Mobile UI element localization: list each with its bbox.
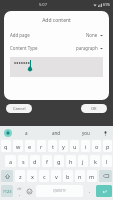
button[interactable]: a [5,155,16,167]
button[interactable]: you [71,126,101,139]
staticText: p [106,143,110,150]
button[interactable]: y [59,140,68,152]
staticText: u [73,143,77,150]
staticText: q [4,143,8,150]
staticText: k [94,158,97,165]
staticText: r [40,143,43,150]
button[interactable]: z [15,170,25,182]
staticText: ?123 [3,189,12,194]
staticText: Cancel [13,106,26,111]
button[interactable]: l [102,155,112,167]
button[interactable]: h [66,155,76,167]
button[interactable]: e [25,140,35,152]
staticText: s [22,158,25,165]
staticText: c [43,173,46,180]
button[interactable]: Emoji [25,185,34,197]
button[interactable]: =\< [15,185,23,197]
staticText: x [31,173,34,180]
staticText: 61% [103,2,110,7]
button[interactable]: s [18,155,28,167]
button[interactable]: o [92,140,101,152]
button[interactable]: Backspace [99,170,112,182]
button[interactable]: Cancel [6,104,32,113]
staticText: =\< [17,187,22,191]
staticText: QWERTY [53,189,66,193]
button[interactable]: Content Type [4,44,109,52]
button[interactable]: Google [4,129,12,137]
button[interactable]: . [85,185,94,197]
staticText: h [69,158,73,165]
staticText: t [52,143,54,150]
staticText: a [25,130,28,136]
staticText: OK [91,106,97,111]
staticText: paragraph [76,45,98,51]
button[interactable]: t [48,140,57,152]
staticText: y [62,143,65,150]
staticText: , [19,191,21,196]
button[interactable]: n [75,170,85,182]
button[interactable]: j [78,155,88,167]
staticText: o [95,143,99,150]
staticText: Content Type [10,45,38,51]
button[interactable]: b [63,170,73,182]
staticText: z [19,173,22,180]
staticText: b [66,173,70,180]
button[interactable]: Voice input [101,129,109,137]
staticText: n [78,173,82,180]
button[interactable]: u [70,140,79,152]
staticText: you [82,130,90,136]
button[interactable]: d [30,155,40,167]
staticText: e [28,143,32,150]
staticText: Add page [10,32,30,38]
button[interactable]: v [51,170,61,182]
button[interactable]: i [81,140,90,152]
staticText: g [57,158,61,165]
button[interactable]: OK [81,104,107,113]
staticText: l [106,158,108,165]
staticText: d [33,158,37,165]
button[interactable]: r [37,140,46,152]
button[interactable]: w [13,140,23,152]
button[interactable]: c [39,170,49,182]
staticText: v [55,173,58,180]
button[interactable] [10,57,103,77]
button[interactable]: g [54,155,64,167]
button[interactable]: Space [36,185,83,197]
button[interactable]: k [90,155,100,167]
button[interactable]: m [87,170,97,182]
staticText: None [86,32,98,38]
staticText: w [16,143,21,150]
staticText: m [89,173,95,180]
staticText: 5:07 [39,2,47,7]
staticText: f [46,158,48,165]
button[interactable]: ?123 [1,185,13,197]
button[interactable]: and [41,126,71,139]
staticText: . [89,188,91,194]
button[interactable]: f [42,155,52,167]
staticText: j [82,158,84,165]
staticText: Add content [4,17,109,24]
button[interactable]: p [103,140,112,152]
button[interactable]: Enter [96,185,112,197]
staticText: and [52,130,61,136]
button[interactable]: a [12,126,41,139]
button[interactable]: Shift [1,170,13,182]
button[interactable]: q [1,140,11,152]
button[interactable]: Add page [4,31,109,39]
button[interactable]: x [27,170,37,182]
staticText: a [9,158,13,165]
staticText: i [85,143,87,150]
